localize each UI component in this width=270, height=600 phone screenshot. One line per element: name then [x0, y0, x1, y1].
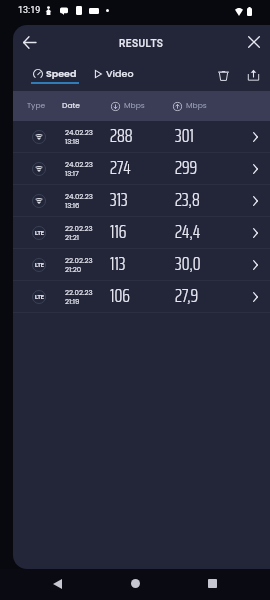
button[interactable]: Delete	[211, 63, 235, 87]
staticText: 30,0	[175, 248, 201, 279]
button[interactable]: 24.02.23 13:17	[13, 153, 270, 185]
staticText: 313	[110, 184, 128, 215]
staticText: 116	[110, 216, 127, 247]
button[interactable]: Home	[119, 568, 151, 599]
staticText: 299	[175, 152, 198, 183]
button[interactable]: Speed	[29, 66, 83, 86]
button[interactable]: Share	[241, 63, 265, 87]
staticText: Type	[27, 100, 46, 111]
button[interactable]: Video	[93, 66, 143, 82]
staticText: 24.02.23 13:18	[65, 128, 93, 146]
staticText: 288	[110, 120, 133, 151]
staticText: Mbps	[124, 100, 145, 111]
staticText: 24.02.23 13:16	[65, 192, 93, 210]
button[interactable]: Close	[239, 27, 269, 57]
button[interactable]: LTE	[13, 281, 270, 313]
staticText: Speed	[46, 67, 77, 80]
staticText: 24,4	[175, 216, 201, 247]
staticText: 22.02.23 21:21	[65, 224, 93, 242]
button[interactable]: LTE	[13, 217, 270, 249]
button[interactable]: Back	[14, 27, 44, 57]
staticText: Mbps	[186, 100, 207, 111]
staticText: Video	[106, 67, 134, 80]
staticText: 274	[110, 152, 131, 183]
button[interactable]: 24.02.23 13:18	[13, 121, 270, 153]
staticText: LTE	[35, 294, 44, 300]
staticText: 27,9	[175, 280, 199, 311]
staticText: 23,8	[175, 184, 200, 215]
button[interactable]: 24.02.23 13:16	[13, 185, 270, 217]
staticText: 301	[175, 120, 194, 151]
staticText: 106	[110, 280, 130, 311]
staticText: RESULTS	[119, 38, 164, 50]
button[interactable]: Back	[41, 568, 73, 599]
staticText: Date	[62, 100, 81, 111]
staticText: 113	[110, 248, 126, 279]
staticText: LTE	[35, 230, 44, 236]
staticText: 22.02.23 21:19	[65, 288, 93, 306]
button[interactable]: LTE	[13, 249, 270, 281]
staticText: LTE	[35, 262, 44, 268]
staticText: 22.02.23 21:20	[65, 256, 93, 274]
staticText: 13:19	[18, 5, 41, 16]
staticText: 24.02.23 13:17	[65, 160, 93, 178]
button[interactable]: Recent apps	[196, 568, 228, 599]
